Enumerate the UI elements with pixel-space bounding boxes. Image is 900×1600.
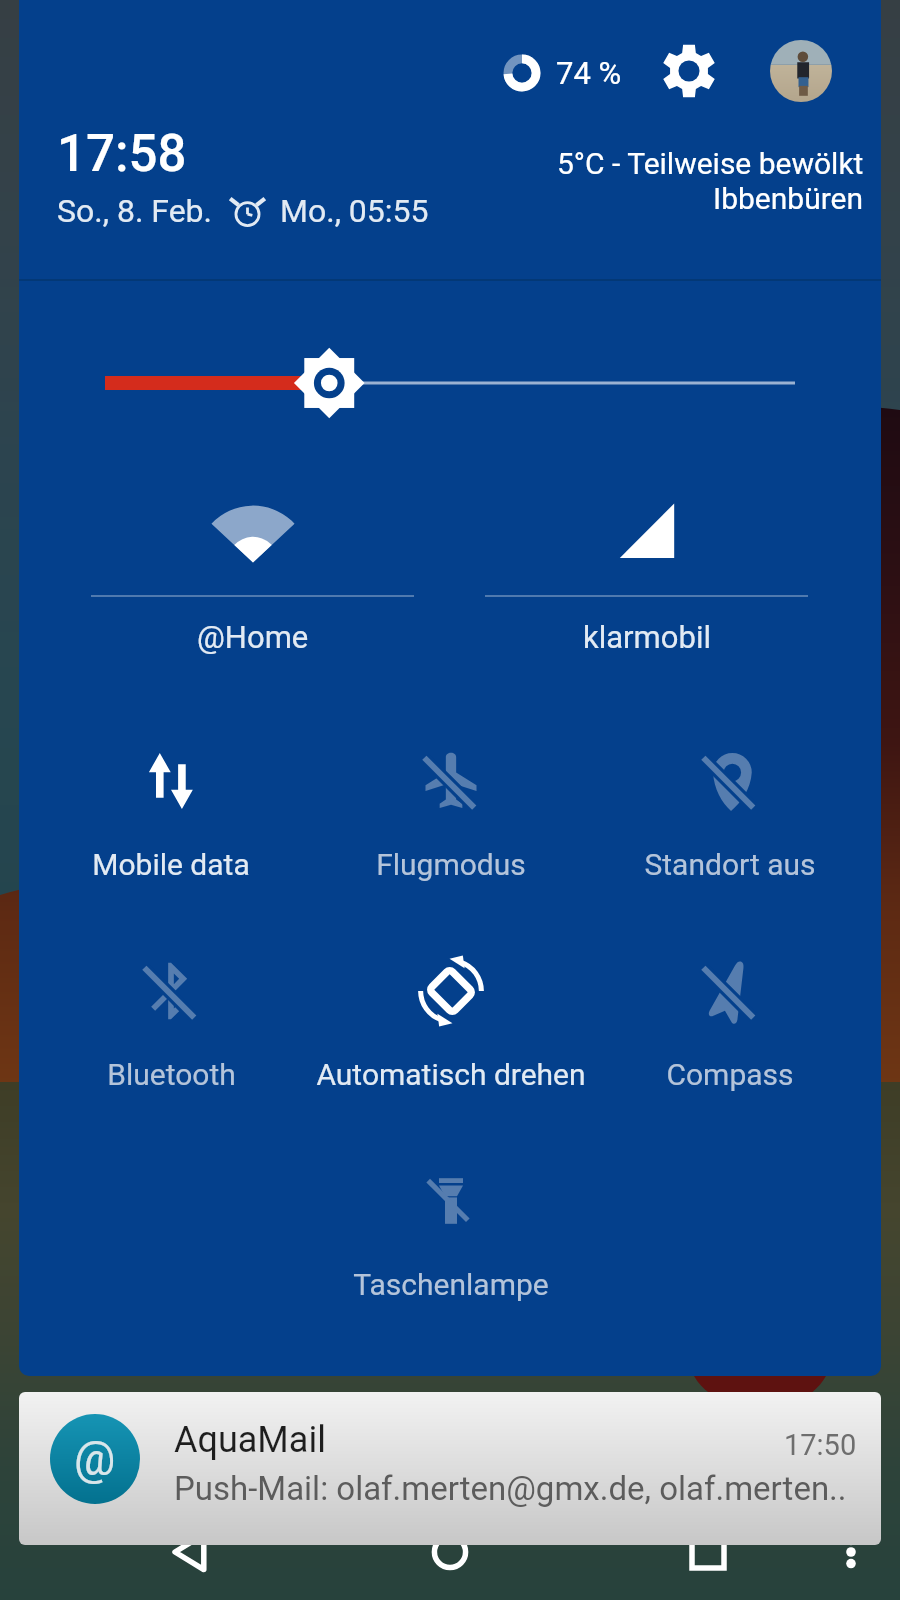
- staticText: So., 8. Feb.: [57, 192, 213, 230]
- button[interactable]: Recent apps: [668, 1512, 748, 1592]
- staticText: Push-Mail: olaf.merten@gmx.de, olaf.mert…: [174, 1469, 847, 1508]
- staticText: Standort aus: [644, 847, 816, 882]
- staticText: Ibbenbüren: [713, 181, 864, 216]
- button[interactable]: Taschenlampe: [311, 1132, 590, 1342]
- staticText: 74 %: [556, 55, 622, 91]
- button[interactable]: Bluetooth: [31, 922, 311, 1132]
- button[interactable]: Mobile data: [31, 712, 311, 922]
- button[interactable]: User profile: [770, 40, 832, 102]
- button[interactable]: 74 %: [496, 45, 626, 101]
- staticText: Taschenlampe: [353, 1267, 549, 1302]
- button[interactable]: Brightness: [19, 281, 881, 477]
- staticText: Flugmodus: [376, 847, 526, 882]
- button[interactable]: Flugmodus: [311, 712, 590, 922]
- staticText: AquaMail: [174, 1419, 326, 1461]
- staticText: 5°C - Teilweise bewölkt: [557, 146, 864, 181]
- button[interactable]: klarmobil: [485, 486, 808, 666]
- button[interactable]: @Home: [91, 486, 414, 666]
- button[interactable]: Home: [410, 1512, 490, 1592]
- staticText: @: [74, 1432, 116, 1486]
- staticText: @Home: [197, 619, 309, 655]
- button[interactable]: @: [19, 1392, 881, 1545]
- staticText: klarmobil: [583, 619, 711, 655]
- button[interactable]: Automatisch drehen: [311, 922, 590, 1132]
- staticText: Bluetooth: [107, 1057, 236, 1092]
- staticText: Mo., 05:55: [280, 192, 429, 230]
- staticText: Mobile data: [92, 847, 250, 882]
- button[interactable]: Standort aus: [590, 712, 869, 922]
- button[interactable]: More options: [811, 1512, 891, 1592]
- staticText: Automatisch drehen: [316, 1057, 586, 1092]
- staticText: 17:58: [57, 124, 187, 184]
- button[interactable]: Back: [151, 1512, 231, 1592]
- button[interactable]: Compass: [590, 922, 869, 1132]
- staticText: 17:50: [784, 1428, 857, 1462]
- button[interactable]: Settings: [655, 37, 723, 105]
- staticText: Compass: [666, 1057, 794, 1092]
